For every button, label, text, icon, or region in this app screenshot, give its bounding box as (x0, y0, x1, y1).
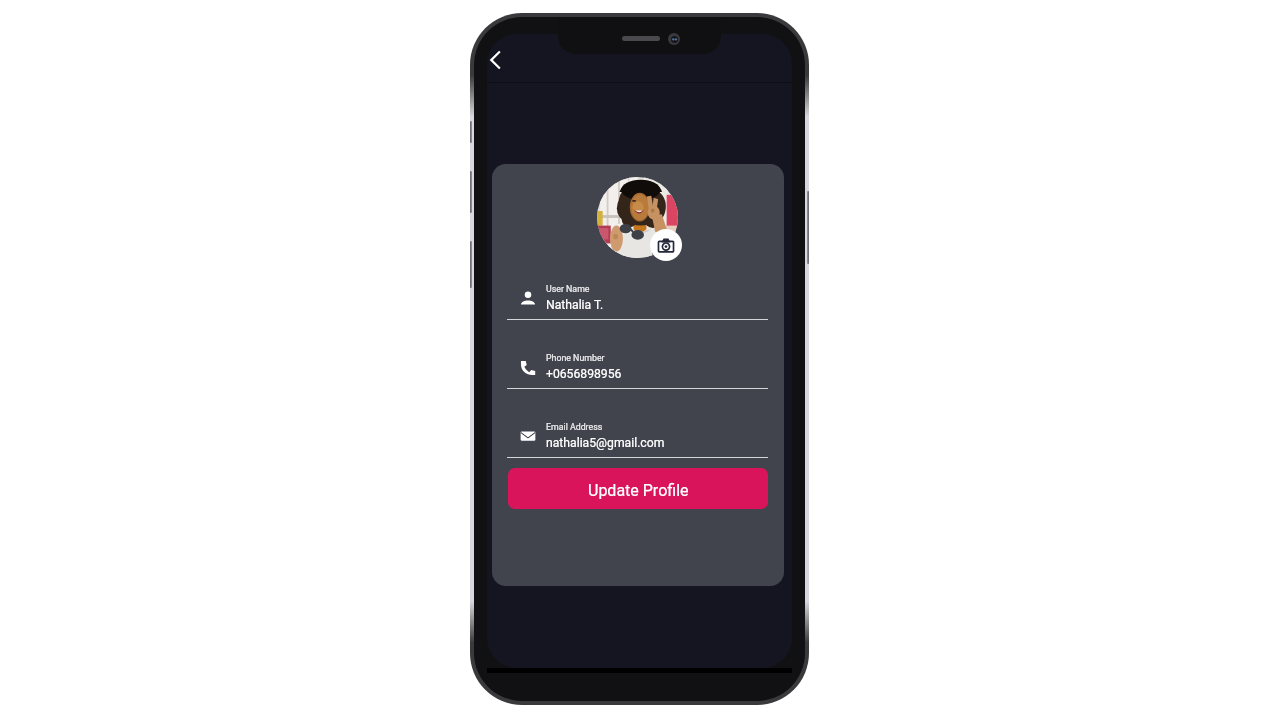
staticText: Email Address (546, 422, 603, 432)
button[interactable]: Change photo (650, 229, 682, 261)
button[interactable]: Phone Number (492, 345, 784, 405)
staticText: nathalia5@gmail.com (546, 436, 665, 450)
staticText: +0656898956 (546, 367, 622, 381)
button[interactable]: Profile photo (597, 177, 678, 258)
button[interactable]: Email Address (492, 414, 784, 474)
staticText: User Name (546, 284, 590, 294)
staticText: Phone Number (546, 353, 605, 363)
button[interactable]: Update Profile (508, 468, 768, 509)
staticText: Nathalia T. (546, 298, 604, 312)
button[interactable]: User Name (492, 276, 784, 336)
staticText: Update Profile (588, 481, 689, 500)
button[interactable]: Back (487, 44, 515, 72)
